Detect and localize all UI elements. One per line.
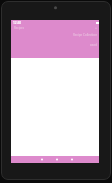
staticText: 12:30	[13, 21, 22, 25]
button[interactable]: Recipes	[14, 26, 25, 30]
staticText: saved	[89, 43, 97, 47]
staticText: Recipe Collection	[72, 33, 97, 37]
